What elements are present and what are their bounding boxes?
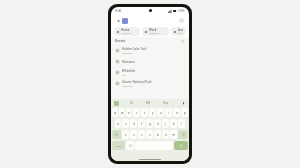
staticText: m xyxy=(172,133,175,137)
staticText: a xyxy=(117,122,119,126)
staticText: Trip xyxy=(163,101,169,105)
button[interactable]: Home xyxy=(114,27,140,36)
staticText: Hill xyxy=(146,101,151,105)
staticText: Recent xyxy=(115,39,126,43)
staticText: j xyxy=(165,122,166,126)
button[interactable]: More options xyxy=(180,39,185,44)
button[interactable]: Whitefish xyxy=(111,67,189,78)
button[interactable]: Emoji xyxy=(126,141,134,150)
button[interactable]: Auto xyxy=(171,27,186,36)
button[interactable]: w xyxy=(119,108,125,117)
button[interactable]: Suggestion xyxy=(114,101,119,106)
staticText: k xyxy=(173,122,175,126)
staticText: v xyxy=(149,133,151,137)
staticText: Home xyxy=(121,28,130,32)
staticText: o xyxy=(176,111,178,115)
button[interactable]: Work xyxy=(142,27,169,36)
button[interactable]: p xyxy=(181,108,188,117)
button[interactable]: Profile xyxy=(178,17,185,24)
button[interactable]: m xyxy=(170,130,177,139)
staticText: Whitefish xyxy=(122,69,136,73)
staticText: q xyxy=(114,111,116,115)
button[interactable]: g xyxy=(146,119,153,128)
staticText: Glacier National Park xyxy=(122,80,152,84)
staticText: 4515 xyxy=(178,32,184,35)
staticText: n xyxy=(165,133,167,137)
staticText: Auto xyxy=(178,28,184,32)
staticText: u xyxy=(160,111,162,115)
button[interactable]: a xyxy=(115,119,121,128)
button[interactable]: j xyxy=(162,119,169,128)
staticText: w xyxy=(121,111,124,115)
button[interactable]: x xyxy=(130,130,137,139)
staticText: 100% xyxy=(178,9,185,13)
button[interactable]: r xyxy=(133,108,140,117)
button[interactable]: t xyxy=(141,108,148,117)
button[interactable]: u xyxy=(157,108,164,117)
staticText: p xyxy=(184,111,186,115)
staticText: MT xyxy=(122,73,126,76)
staticText: x xyxy=(133,133,135,137)
staticText: g xyxy=(149,122,151,126)
staticText: Hidden Lake Trail xyxy=(122,47,147,51)
button[interactable]: Montana xyxy=(111,56,189,67)
button[interactable]: e xyxy=(126,108,132,117)
button[interactable]: Voice input xyxy=(181,101,186,106)
button[interactable]: ?123 xyxy=(112,141,125,150)
button[interactable]: z xyxy=(122,130,129,139)
staticText: ?123 xyxy=(116,144,122,147)
staticText: l xyxy=(181,122,182,126)
staticText: h xyxy=(157,122,159,126)
button[interactable]: l xyxy=(178,119,185,128)
staticText: s xyxy=(125,122,127,126)
staticText: b xyxy=(157,133,159,137)
staticText: Google, 1... xyxy=(149,32,162,35)
staticText: 9:30 xyxy=(115,9,122,13)
button[interactable]: Backspace xyxy=(178,130,188,139)
button[interactable]: f xyxy=(138,119,145,128)
button[interactable]: q xyxy=(112,108,118,117)
staticText: z xyxy=(125,133,127,137)
staticText: y xyxy=(152,111,154,115)
staticText: Montana xyxy=(122,51,133,54)
staticText: t xyxy=(144,111,146,115)
button[interactable]: h xyxy=(154,119,161,128)
button[interactable]: y xyxy=(149,108,156,117)
button[interactable]: Shift xyxy=(112,130,121,139)
staticText: Work xyxy=(149,28,157,32)
staticText: Montana xyxy=(122,84,133,87)
staticText: r xyxy=(136,111,138,115)
staticText: e xyxy=(128,111,130,115)
button[interactable]: Search xyxy=(174,141,188,150)
button[interactable]: o xyxy=(173,108,180,117)
button[interactable]: k xyxy=(170,119,177,128)
button[interactable]: Hidden Lake Trail xyxy=(111,45,189,56)
button[interactable]: Search field xyxy=(122,18,128,24)
staticText: 195 Jones xyxy=(121,32,132,35)
staticText: c xyxy=(141,133,143,137)
button[interactable]: Glacier National Park xyxy=(111,78,189,89)
button[interactable]: v xyxy=(146,130,153,139)
staticText: To xyxy=(130,101,134,105)
staticText: i xyxy=(168,111,169,115)
button[interactable]: c xyxy=(138,130,145,139)
button[interactable]: d xyxy=(130,119,137,128)
button[interactable]: s xyxy=(122,119,129,128)
staticText: f xyxy=(141,122,143,126)
button[interactable]: Back xyxy=(115,17,122,24)
staticText: Montana xyxy=(122,60,135,64)
button[interactable]: i xyxy=(165,108,172,117)
button[interactable]: n xyxy=(162,130,169,139)
staticText: d xyxy=(133,122,135,126)
button[interactable]: b xyxy=(154,130,161,139)
